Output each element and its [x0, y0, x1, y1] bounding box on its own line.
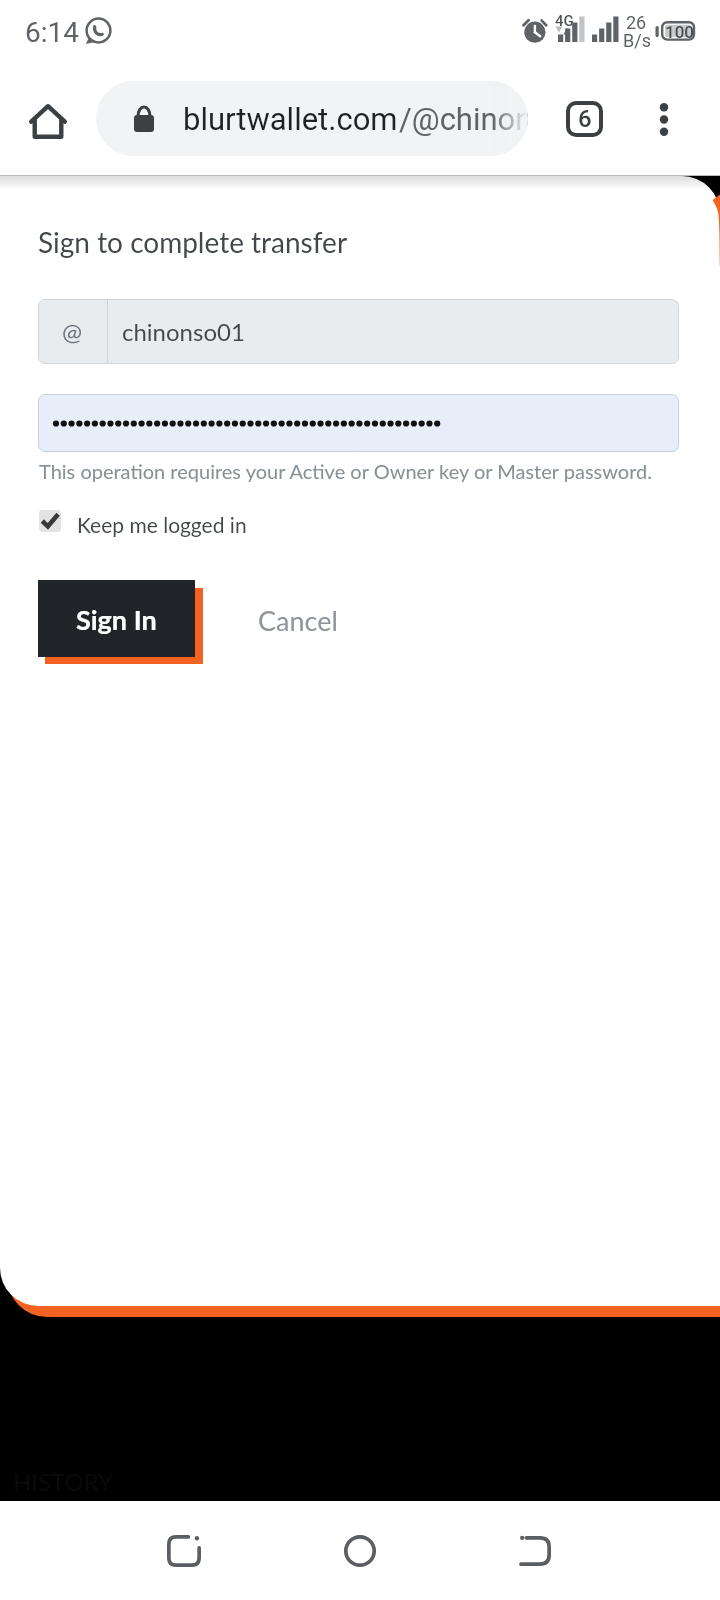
staticText: Keep me logged in [77, 512, 247, 537]
staticText: 26 [626, 12, 647, 33]
button[interactable]: Cancel [250, 600, 346, 640]
staticText: /@chinonso01 [399, 101, 528, 137]
button[interactable]: @ [38, 299, 679, 364]
staticText: 100 [665, 22, 694, 42]
button[interactable] [38, 394, 679, 452]
staticText: B/s [623, 30, 651, 51]
staticText: 4G [555, 12, 574, 30]
staticText: chinonso01 [122, 317, 245, 346]
staticText: Cancel [258, 604, 338, 636]
staticText: 6:14 [25, 16, 79, 49]
button[interactable]: Sign In [38, 580, 195, 657]
button[interactable]: Home [8, 77, 88, 165]
button[interactable]: blurtwallet.com [96, 81, 528, 156]
staticText: @ [62, 317, 83, 346]
staticText: blurtwallet.com [183, 101, 398, 137]
button[interactable]: More options [628, 75, 700, 163]
button[interactable]: Back [476, 1513, 596, 1589]
staticText: Sign to complete transfer [38, 225, 348, 259]
staticText: 6 [578, 105, 592, 133]
staticText: HISTORY [13, 1467, 114, 1496]
button[interactable]: Keep me logged in [36, 506, 276, 538]
button[interactable]: Home [300, 1513, 420, 1589]
button[interactable]: Tabs [546, 75, 623, 163]
staticText: Sign In [76, 603, 157, 635]
staticText: This operation requires your Active or O… [39, 459, 652, 483]
button[interactable]: Recent apps [124, 1513, 244, 1589]
